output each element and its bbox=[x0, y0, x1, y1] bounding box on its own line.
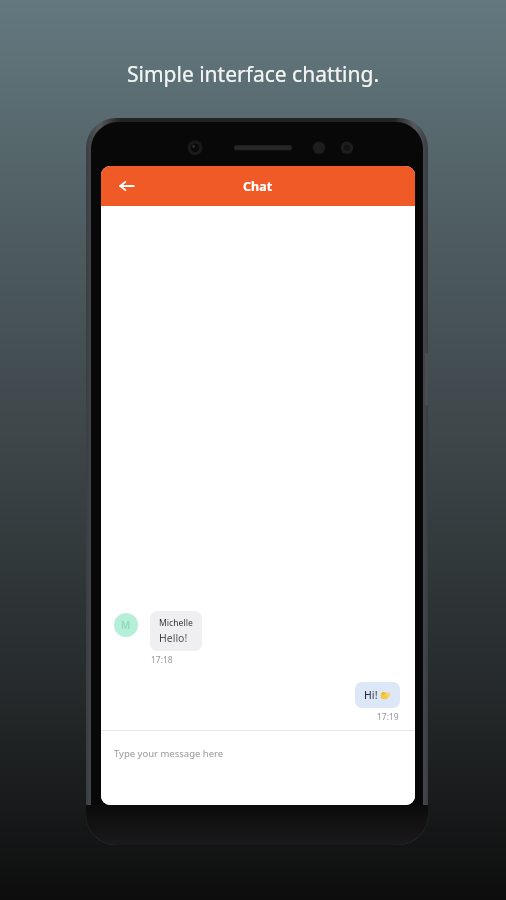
button[interactable]: Hi! bbox=[101, 682, 400, 723]
staticText: Hello! bbox=[159, 631, 188, 645]
staticText: Type your message here bbox=[114, 747, 224, 760]
staticText: Hi! bbox=[364, 688, 378, 702]
button[interactable]: Back bbox=[113, 172, 141, 200]
staticText: Chat bbox=[243, 178, 273, 195]
button[interactable]: Type your message here bbox=[101, 731, 415, 805]
button[interactable]: M bbox=[114, 611, 415, 666]
staticText: M bbox=[121, 618, 131, 632]
staticText: Michelle bbox=[159, 617, 193, 629]
staticText: 17:18 bbox=[151, 654, 173, 666]
staticText: 17:19 bbox=[377, 711, 399, 723]
staticText: Simple interface chatting. bbox=[0, 60, 506, 89]
